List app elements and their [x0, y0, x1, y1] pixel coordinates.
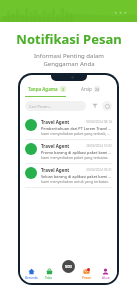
button[interactable]: Arsip [68, 84, 112, 94]
button[interactable]: Toko [40, 268, 58, 280]
staticText: Pesan [82, 276, 92, 280]
staticText: 24 [95, 87, 100, 92]
staticText: Tanpa Agama [28, 86, 58, 92]
button[interactable]: Travel Agent [20, 140, 117, 163]
button[interactable]: SDI [62, 260, 75, 273]
button[interactable]: Filter [90, 101, 100, 111]
staticText: Travel Agent [41, 119, 70, 125]
button[interactable]: Travel Agent [20, 164, 117, 187]
staticText: SDI [65, 264, 72, 269]
button[interactable]: Settings [102, 101, 112, 111]
staticText: Informasi Penting dalam [34, 52, 104, 60]
staticText: Sekian barang di aplikasi paket kami tel… [41, 174, 112, 179]
staticText: 30/04/2024 08:14 [86, 120, 112, 124]
button[interactable]: Akun [96, 268, 115, 280]
staticText: Cari Pesan... [29, 104, 53, 109]
staticText: Pemberitahuan dari PT Lorem Travel Persa… [41, 126, 112, 131]
button[interactable]: Travel Agent [20, 116, 117, 139]
staticText: Beranda [25, 276, 38, 280]
staticText: Notifikasi Pesan [16, 30, 122, 48]
staticText: Arsip [81, 86, 92, 92]
staticText: Toko [45, 276, 53, 280]
button[interactable]: Cari Pesan... [25, 101, 86, 111]
staticText: 3 [62, 87, 65, 92]
staticText: Genggaman Anda [43, 60, 95, 68]
staticText: 20/04/2024 09:31 [86, 168, 112, 172]
staticText: Travel Agent [41, 167, 70, 173]
button[interactable]: Pesan [77, 268, 96, 280]
staticText: Akun [102, 276, 110, 280]
button[interactable]: Tanpa Agama [25, 84, 68, 94]
staticText: kami menyediakan paket yang terbatas. [41, 155, 109, 160]
staticText: Travel Agent [41, 143, 70, 149]
button[interactable]: Beranda [22, 268, 40, 280]
staticText: kami menyediakan paket yang terbaik, kam… [41, 131, 112, 136]
staticText: Promo barang di aplikasi paket kami tela… [41, 150, 112, 155]
staticText: 28/04/2024 10:02 [86, 144, 112, 148]
staticText: kami menyediakan untuk yang terbatas. [41, 179, 109, 184]
